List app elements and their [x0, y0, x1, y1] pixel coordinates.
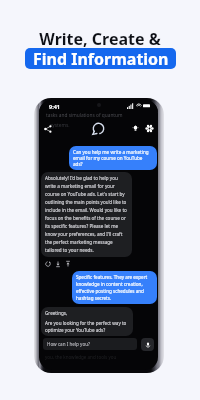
button[interactable]: Download: [53, 259, 63, 269]
staticText: Are you looking for the perfect way to o…: [45, 320, 129, 333]
button[interactable]: Share: [42, 123, 53, 134]
staticText: Greetings,: [45, 310, 68, 316]
staticText: Absolutely! I'd be glad to help you writ…: [45, 175, 128, 254]
button[interactable]: Settings: [144, 123, 155, 134]
button[interactable]: Find Information: [25, 48, 176, 69]
button[interactable]: Share: [63, 259, 73, 269]
staticText: Can you help me write a marketing email …: [73, 149, 153, 167]
button[interactable]: Assistant: [92, 122, 105, 135]
staticText: you, the knowledge and tools you: [45, 354, 117, 360]
button[interactable]: Absolutely! I'd be glad to help you writ…: [41, 172, 132, 257]
button[interactable]: Specific features. They are expert knowl…: [72, 271, 157, 304]
staticText: tasks and simulations of quantum: [46, 112, 123, 119]
staticText: How can I help you?: [47, 341, 91, 347]
staticText: systems.: [50, 122, 70, 129]
staticText: Specific features. They are expert knowl…: [76, 274, 153, 301]
button[interactable]: Voice input: [141, 338, 154, 351]
button[interactable]: Ideas: [130, 123, 141, 134]
staticText: 9:41: [49, 103, 60, 110]
button[interactable]: Can you help me write a marketing email …: [69, 146, 157, 170]
staticText: Find Information: [33, 48, 169, 69]
staticText: Write, Create &: [39, 28, 161, 50]
button[interactable]: Regenerate: [43, 259, 53, 269]
button[interactable]: Greetings,: [41, 307, 133, 336]
button[interactable]: How can I help you?: [43, 338, 137, 350]
